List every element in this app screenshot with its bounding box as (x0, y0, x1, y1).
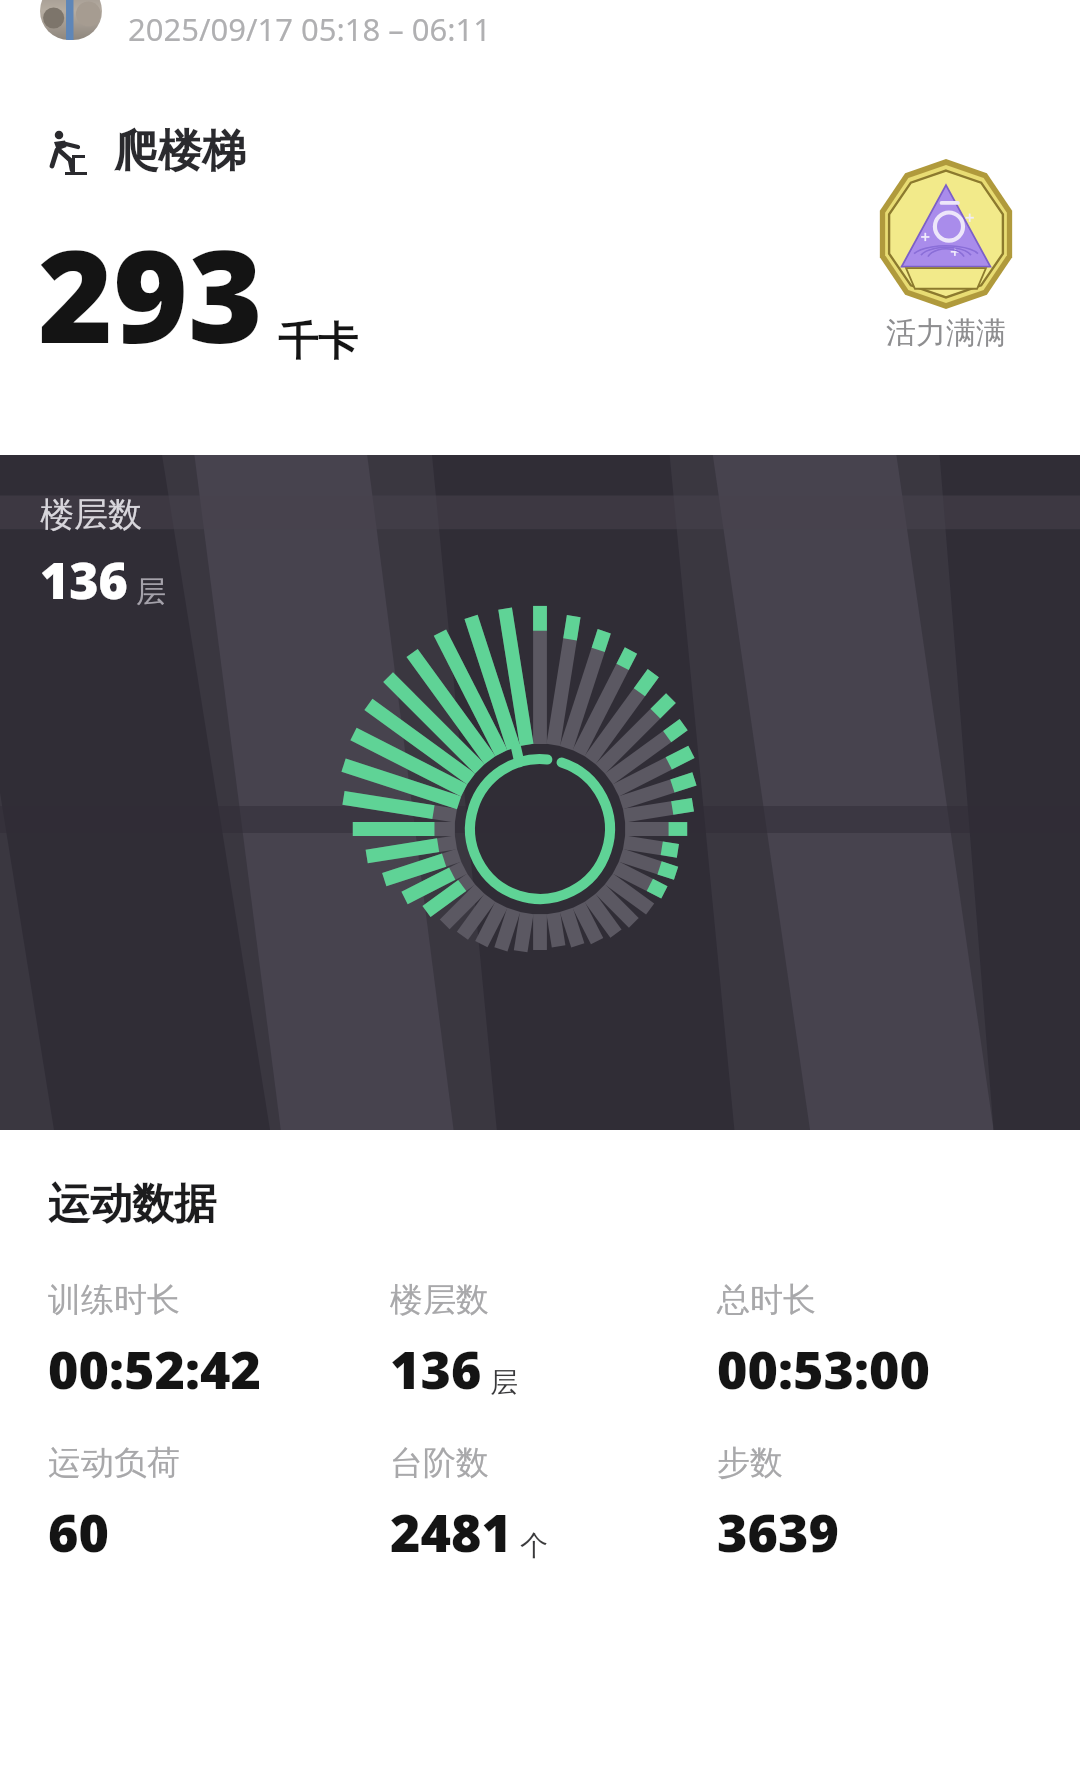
button[interactable]: 训练时长 (48, 1279, 390, 1404)
staticText: 2025/09/17 05:18 – 06:11 (128, 8, 492, 50)
staticText: 活力满满 (886, 314, 1006, 352)
staticText: 楼层数 (40, 493, 142, 536)
staticText: 训练时长 (48, 1279, 180, 1321)
button[interactable]: Climb intensity radial chart (310, 599, 770, 1059)
staticText: 00:52:42 (48, 1333, 261, 1404)
button[interactable]: 运动负荷 (48, 1442, 390, 1567)
staticText: 00:53:00 (717, 1333, 930, 1404)
button[interactable]: 总时长 (717, 1279, 1044, 1404)
staticText: 136 (40, 546, 128, 614)
staticText: 136 (390, 1333, 482, 1404)
staticText: 2481 (390, 1496, 512, 1567)
staticText: 楼层数 (390, 1279, 489, 1321)
staticText: 层 (136, 573, 166, 611)
staticText: 爬楼梯 (114, 124, 246, 179)
staticText: 运动负荷 (48, 1442, 180, 1484)
button[interactable]: 步数 (717, 1442, 1044, 1567)
staticText: 层 (490, 1365, 518, 1400)
button[interactable]: 活力满满 weekly badge (872, 160, 1020, 352)
button[interactable]: 台阶数 (390, 1442, 717, 1567)
staticText: 台阶数 (390, 1442, 489, 1484)
button[interactable]: 楼层数 (390, 1279, 717, 1404)
staticText: 60 (48, 1496, 109, 1567)
staticText: 千卡 (278, 316, 358, 366)
staticText: 总时长 (717, 1279, 816, 1321)
button[interactable] (40, 0, 102, 40)
staticText: 步数 (717, 1442, 783, 1484)
staticText: 运动数据 (48, 1178, 216, 1231)
staticText: 293 (38, 206, 264, 380)
staticText: 个 (520, 1528, 548, 1563)
staticText: 3639 (717, 1496, 839, 1567)
